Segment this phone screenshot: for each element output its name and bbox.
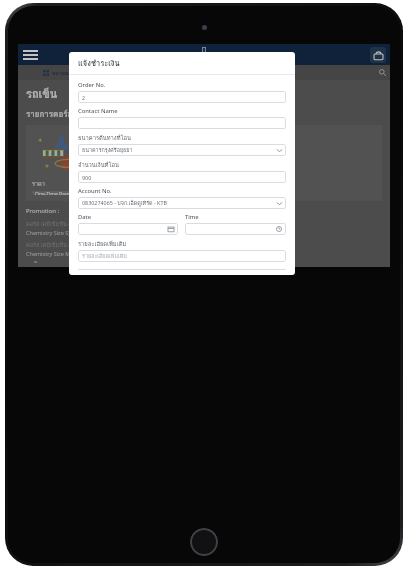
staticText: Chemistry Size M) <box>26 250 72 257</box>
button[interactable]: ค้นหาคอร์สเรียน <box>100 65 390 80</box>
staticText: Chemistry Size S) <box>26 229 70 236</box>
staticText: จำนวนเงินที่โอน <box>78 160 119 169</box>
staticText: รายการคอร์สเรียน <box>26 108 90 121</box>
button[interactable]: 2 <box>78 91 286 103</box>
staticText: รถเข็น <box>26 85 58 102</box>
button[interactable]: 900 <box>78 171 286 183</box>
staticText: ธนาคารกรุงศรีอยุธยา <box>82 146 133 155</box>
button[interactable]: ราคา <box>26 125 382 201</box>
staticText: ค้นหาคอร์สเรียน <box>105 69 143 77</box>
button[interactable]: รายละเอียดเพิ่มเติม <box>78 250 286 262</box>
staticText: Promotion : <box>26 207 60 215</box>
button[interactable]: หมวดหมู่ <box>18 65 96 80</box>
staticText: 0830274065 - บจก.เอ็ดดูเทิร์ด - KTB <box>82 199 167 208</box>
button[interactable] <box>78 223 178 235</box>
button[interactable]: Home <box>190 528 218 556</box>
staticText: ธนาคารต้นทางที่โอน <box>78 133 132 142</box>
staticText: ราคา <box>32 180 45 189</box>
staticText: Account No. <box>78 187 112 195</box>
staticText: คอร์ส เคมีเข้มข้น อ.อุ้ <box>26 241 77 250</box>
button[interactable]: Menu <box>23 46 41 64</box>
staticText: 2 <box>82 94 86 101</box>
staticText: Contact Name <box>78 107 118 115</box>
staticText: One-Time Payment <box>35 191 80 195</box>
staticText: รายละเอียดเพิ่มเติม <box>82 252 127 261</box>
staticText: รายละเอียดเพิ่มเติม <box>78 239 127 248</box>
staticText: คอร์ส เคมีเข้มข้น อ.อุ้ <box>26 220 77 229</box>
button[interactable]: Cart <box>370 47 386 63</box>
staticText: หมวดหมู่ <box>52 69 72 77</box>
staticText: Date <box>78 213 92 221</box>
staticText: แจ้งชำระเงิน <box>78 57 120 69</box>
staticText: Time <box>185 213 199 221</box>
button[interactable]: 0830274065 - บจก.เอ็ดดูเทิร์ด - KTB <box>78 197 286 209</box>
staticText: 900 <box>82 174 92 181</box>
button[interactable]: ธนาคารกรุงศรีอยุธยา <box>78 144 286 156</box>
button[interactable] <box>78 117 286 129</box>
button[interactable] <box>185 223 286 235</box>
staticText: Order No. <box>78 81 106 89</box>
